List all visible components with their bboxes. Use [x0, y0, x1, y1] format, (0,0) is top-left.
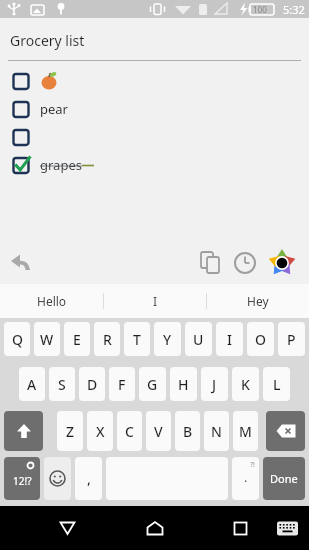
button[interactable]: W — [34, 322, 60, 356]
button[interactable]: B — [175, 411, 200, 451]
button[interactable]: U — [185, 322, 212, 356]
button[interactable]: M — [233, 411, 258, 451]
staticText: 5:32 — [283, 2, 305, 17]
staticText: pear — [40, 100, 68, 118]
button[interactable]: . — [232, 457, 259, 500]
button[interactable]: Grocery list — [10, 31, 85, 50]
button[interactable] — [13, 67, 309, 95]
staticText: I — [227, 330, 232, 349]
button[interactable]: S — [49, 367, 75, 401]
button[interactable]: A — [19, 367, 45, 401]
button[interactable] — [266, 411, 305, 451]
button[interactable]: N — [204, 411, 229, 451]
staticText: grapes — [40, 156, 82, 174]
button[interactable]: I — [216, 322, 243, 356]
button[interactable]: 12!? — [4, 457, 40, 500]
staticText: N — [211, 422, 222, 441]
button[interactable] — [10, 253, 32, 273]
staticText: 100 — [253, 4, 267, 15]
staticText: B — [183, 422, 193, 441]
staticText: S — [58, 375, 66, 394]
staticText: I — [153, 293, 158, 309]
button[interactable] — [13, 123, 309, 151]
staticText: M — [239, 422, 252, 441]
staticText: Z — [66, 422, 75, 441]
button[interactable]: G — [139, 367, 166, 401]
button[interactable]: F — [109, 367, 135, 401]
staticText: . — [244, 468, 248, 486]
button[interactable]: J — [201, 367, 228, 401]
button[interactable]: , — [75, 457, 102, 500]
staticText: 12!? — [13, 474, 32, 488]
staticText: , — [87, 469, 91, 488]
button[interactable]: K — [232, 367, 259, 401]
button[interactable]: Y — [154, 322, 181, 356]
staticText: Done — [270, 471, 298, 486]
button[interactable]: pear — [13, 95, 309, 123]
staticText: E — [73, 330, 81, 349]
staticText: R — [103, 330, 112, 349]
staticText: G — [147, 375, 158, 394]
staticText: H — [178, 375, 189, 394]
staticText: K — [241, 375, 250, 394]
staticText: Hey — [247, 293, 269, 309]
button[interactable]: Q — [4, 322, 30, 356]
staticText: O — [255, 330, 266, 349]
staticText: J — [212, 375, 217, 394]
staticText: C — [125, 422, 134, 441]
button[interactable]: V — [146, 411, 171, 451]
button[interactable]: I — [104, 284, 206, 318]
button[interactable]: Z — [57, 411, 83, 451]
staticText: X — [96, 422, 105, 441]
button[interactable] — [4, 411, 43, 451]
staticText: U — [193, 330, 204, 349]
button[interactable] — [59, 521, 76, 536]
button[interactable]: R — [94, 322, 120, 356]
button[interactable] — [233, 251, 257, 275]
staticText: Y — [163, 330, 172, 349]
button[interactable]: X — [87, 411, 113, 451]
staticText: Q — [12, 330, 23, 349]
button[interactable] — [146, 521, 164, 536]
staticText: Hello — [37, 293, 67, 309]
button[interactable] — [277, 521, 298, 536]
button[interactable]: Done — [263, 457, 305, 500]
button[interactable]: Hello — [0, 284, 103, 318]
button[interactable] — [268, 249, 296, 277]
button[interactable]: D — [79, 367, 105, 401]
button[interactable] — [199, 250, 223, 276]
staticText: W — [40, 330, 54, 349]
button[interactable] — [233, 521, 248, 536]
button[interactable]: H — [170, 367, 197, 401]
button[interactable]: E — [64, 322, 90, 356]
button[interactable]: T — [124, 322, 150, 356]
staticText: A — [27, 375, 37, 394]
staticText: D — [87, 375, 98, 394]
staticText: T — [133, 330, 141, 349]
staticText: F — [118, 375, 126, 394]
button[interactable]: O — [247, 322, 274, 356]
staticText: ?! — [250, 460, 255, 470]
button[interactable]: P — [278, 322, 305, 356]
button[interactable]: grapes — [13, 151, 309, 179]
button[interactable]: Hey — [207, 284, 309, 318]
staticText: L — [273, 375, 281, 394]
button[interactable] — [44, 457, 71, 500]
staticText: V — [154, 422, 163, 441]
staticText: P — [287, 330, 296, 349]
button[interactable]: C — [117, 411, 142, 451]
button[interactable]: L — [263, 367, 290, 401]
